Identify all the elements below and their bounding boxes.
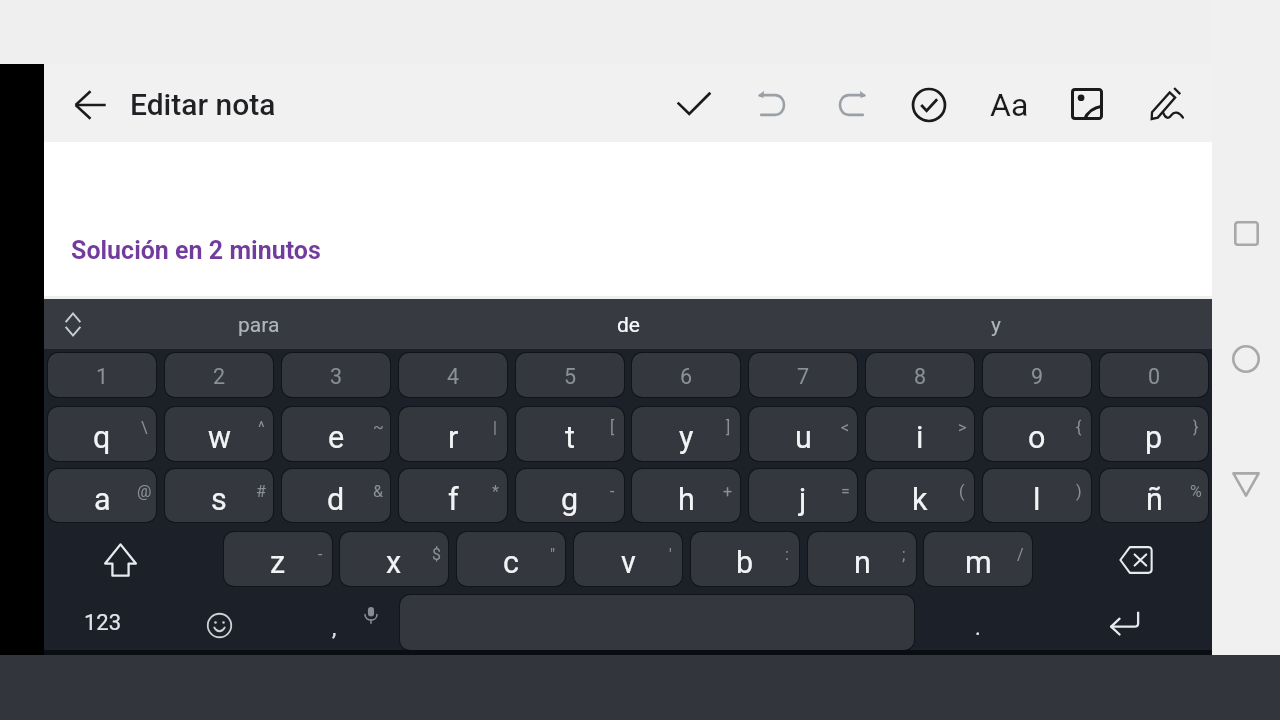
button[interactable]: u — [749, 407, 857, 461]
staticText: a — [94, 482, 111, 518]
button[interactable]: d — [282, 469, 390, 522]
button[interactable]: b — [691, 532, 799, 586]
button[interactable]: s — [165, 469, 273, 522]
button[interactable]: Draw — [1141, 77, 1195, 131]
button[interactable]: Checklist — [902, 78, 956, 132]
staticText: y — [991, 313, 1001, 338]
staticText: Solución en 2 minutos — [71, 236, 321, 265]
staticText: 7 — [797, 364, 810, 389]
staticText: . — [975, 615, 981, 641]
button[interactable]: z — [224, 532, 332, 586]
button[interactable]: Aa — [982, 78, 1036, 132]
button[interactable]: g — [516, 469, 624, 522]
staticText: e — [328, 420, 345, 456]
button[interactable]: a — [48, 469, 156, 522]
staticText: y — [679, 420, 694, 456]
staticText: v — [621, 545, 636, 581]
button[interactable]: Insert image — [1060, 77, 1114, 131]
button[interactable]: 0 — [1100, 353, 1208, 397]
button[interactable]: Undo — [745, 78, 799, 132]
staticText: t — [565, 420, 575, 456]
staticText: 8 — [914, 364, 927, 389]
button[interactable]: h — [632, 469, 740, 522]
staticText: c — [503, 545, 519, 581]
staticText: k — [912, 482, 928, 518]
button[interactable]: c — [457, 532, 565, 586]
staticText: o — [1028, 420, 1046, 456]
staticText: { — [1076, 418, 1082, 437]
staticText: @ — [137, 482, 152, 501]
button[interactable]: f — [399, 469, 507, 522]
staticText: : — [785, 545, 789, 564]
button[interactable]: Backspace — [1106, 530, 1166, 590]
staticText: + — [723, 482, 733, 501]
staticText: ; — [902, 545, 906, 564]
staticText: ] — [726, 418, 731, 437]
button[interactable]: 9 — [983, 353, 1091, 397]
staticText: # — [256, 482, 266, 501]
staticText: ' — [669, 545, 672, 564]
staticText: w — [208, 420, 231, 456]
staticText: l — [1033, 482, 1041, 518]
staticText: para — [238, 313, 280, 338]
button[interactable]: Emoji — [194, 600, 245, 651]
button[interactable]: . — [938, 601, 1018, 655]
button[interactable]: 8 — [866, 353, 974, 397]
staticText: $ — [432, 545, 441, 564]
staticText: 9 — [1031, 364, 1044, 389]
button[interactable]: x — [340, 532, 448, 586]
button[interactable]: 4 — [399, 353, 507, 397]
button[interactable]: k — [866, 469, 974, 522]
staticText: x — [386, 545, 402, 581]
button[interactable]: y — [632, 407, 740, 461]
button[interactable]: i — [866, 407, 974, 461]
button[interactable]: w — [165, 407, 273, 461]
button[interactable]: Done — [667, 77, 721, 131]
button[interactable]: v — [574, 532, 682, 586]
button[interactable]: 3 — [282, 353, 390, 397]
staticText: q — [93, 420, 111, 456]
button[interactable]: 123 — [63, 596, 143, 650]
staticText: ñ — [1146, 482, 1163, 518]
button[interactable]: e — [282, 407, 390, 461]
button[interactable]: Home — [1212, 325, 1280, 393]
button[interactable]: , — [294, 601, 374, 655]
staticText: ) — [1076, 482, 1082, 501]
button[interactable]: n — [808, 532, 916, 586]
button[interactable]: r — [399, 407, 507, 461]
button[interactable]: l — [983, 469, 1091, 522]
button[interactable]: t — [516, 407, 624, 461]
button[interactable]: Back — [62, 77, 118, 133]
button[interactable]: 5 — [516, 353, 624, 397]
staticText: i — [916, 420, 924, 456]
button[interactable]: Back — [1212, 450, 1280, 518]
button[interactable]: y — [916, 299, 1076, 349]
button[interactable]: m — [924, 532, 1032, 586]
button[interactable]: Redo — [825, 78, 879, 132]
button[interactable]: p — [1100, 407, 1208, 461]
button[interactable]: 2 — [165, 353, 273, 397]
button[interactable]: ñ — [1100, 469, 1208, 522]
button[interactable]: j — [749, 469, 857, 522]
button[interactable]: 6 — [632, 353, 740, 397]
button[interactable]: Expand suggestions — [58, 309, 88, 339]
staticText: - — [318, 545, 323, 564]
staticText: \ — [141, 418, 148, 437]
button[interactable]: o — [983, 407, 1091, 461]
staticText: de — [617, 313, 640, 338]
button[interactable]: para — [179, 299, 339, 349]
staticText: | — [493, 418, 497, 437]
staticText: * — [492, 482, 499, 501]
staticText: Editar nota — [130, 87, 276, 122]
staticText: 0 — [1148, 364, 1161, 389]
button[interactable]: 7 — [749, 353, 857, 397]
staticText: m — [965, 545, 992, 581]
button[interactable]: Enter — [1096, 595, 1152, 651]
button[interactable]: 1 — [48, 353, 156, 397]
button[interactable]: Shift — [90, 530, 150, 590]
staticText: ~ — [373, 418, 384, 437]
button[interactable]: de — [548, 299, 708, 349]
button[interactable]: Recent apps — [1212, 199, 1280, 267]
button[interactable]: q — [48, 407, 156, 461]
